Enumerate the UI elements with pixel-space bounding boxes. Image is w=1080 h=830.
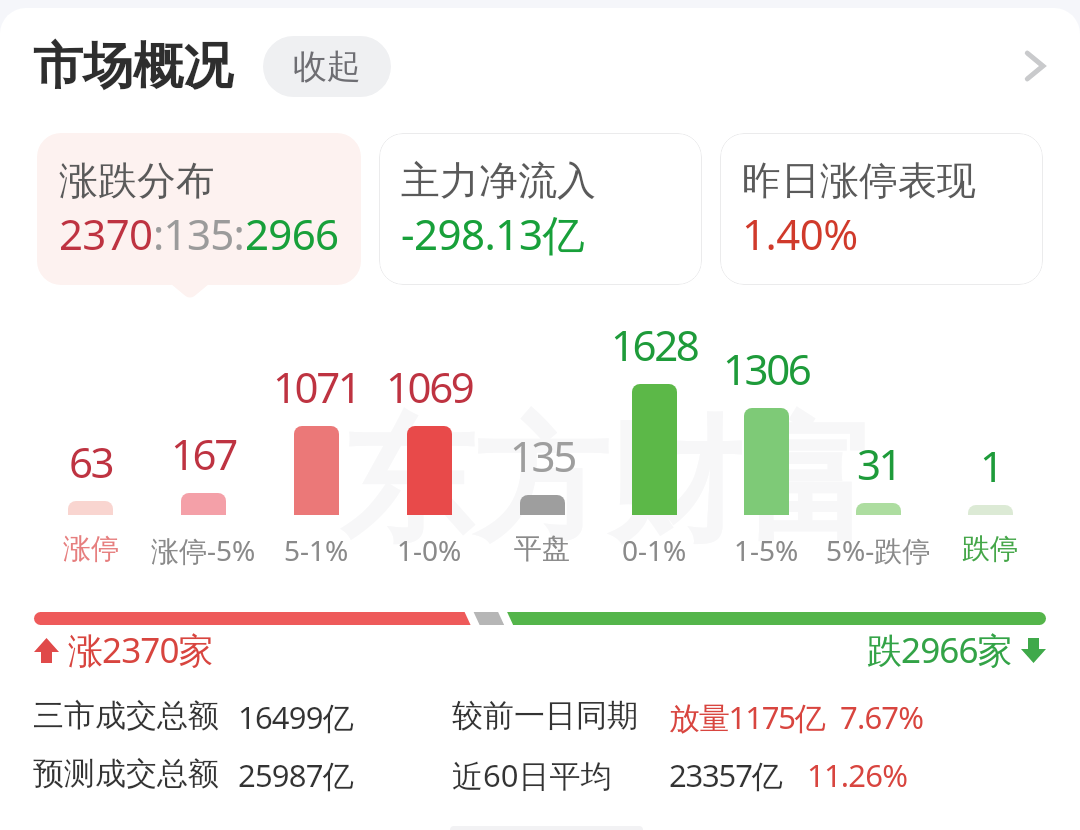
staticText: 2370: [59, 205, 153, 262]
staticText: 63: [69, 433, 113, 490]
staticText: 16499亿: [238, 696, 353, 738]
staticText: 放量1175亿: [669, 696, 825, 738]
button[interactable]: 预测成交总额: [0, 754, 1080, 798]
staticText: 1306: [723, 340, 810, 397]
button[interactable]: 昨日涨停表现: [720, 133, 1043, 285]
staticText: 涨2370家: [68, 626, 213, 674]
button[interactable]: 三市成交总额: [0, 696, 1080, 740]
staticText: 主力净流入: [401, 156, 596, 205]
staticText: 23357亿: [669, 754, 782, 796]
staticText: 1069: [386, 358, 473, 415]
staticText: 5%-跌停: [826, 531, 931, 566]
staticText: :135:: [153, 205, 245, 262]
button[interactable]: 涨跌分布: [37, 133, 361, 285]
staticText: 31: [857, 435, 901, 492]
staticText: 1.40%: [742, 205, 858, 262]
button[interactable]: 167: [147, 306, 260, 566]
button[interactable]: 1628: [598, 306, 710, 566]
staticText: 11.26%: [807, 754, 908, 796]
staticText: 涨停-5%: [151, 531, 256, 566]
staticText: 25987亿: [238, 754, 353, 796]
button[interactable]: 1071: [260, 306, 373, 566]
staticText: 昨日涨停表现: [742, 156, 976, 205]
staticText: 7.67%: [840, 696, 924, 738]
staticText: 1-0%: [397, 531, 462, 566]
staticText: -298.13亿: [401, 205, 584, 262]
staticText: 三市成交总额: [33, 696, 219, 735]
staticText: 1628: [611, 316, 698, 373]
staticText: 1: [980, 437, 1002, 494]
button[interactable]: 市场概况: [0, 8, 1080, 124]
staticText: 2966: [245, 205, 339, 262]
staticText: 涨跌分布: [59, 156, 215, 205]
staticText: 135: [510, 427, 575, 484]
staticText: 涨停: [63, 531, 119, 566]
button[interactable]: 63: [34, 306, 147, 566]
button[interactable]: 1: [934, 306, 1046, 566]
staticText: 收起: [293, 45, 361, 88]
staticText: 0-1%: [622, 531, 687, 566]
staticText: 跌停: [962, 531, 1018, 566]
staticText: 近60日平均: [452, 754, 612, 796]
button[interactable]: 收起: [263, 36, 391, 97]
staticText: 1-5%: [734, 531, 799, 566]
staticText: 东方财富: [340, 398, 876, 567]
button[interactable]: 31: [822, 306, 934, 566]
button[interactable]: More: [991, 26, 1071, 106]
staticText: 167: [171, 425, 236, 482]
staticText: 跌2966家: [867, 626, 1012, 674]
button[interactable]: 135: [486, 306, 598, 566]
button[interactable]: 1069: [373, 306, 486, 566]
staticText: 平盘: [514, 531, 570, 566]
staticText: 市场概况: [33, 35, 233, 98]
staticText: 1071: [273, 358, 360, 415]
button[interactable]: 主力净流入: [379, 133, 702, 285]
button[interactable]: 1306: [710, 306, 822, 566]
staticText: 较前一日同期: [452, 696, 638, 735]
staticText: 5-1%: [284, 531, 349, 566]
staticText: 预测成交总额: [33, 754, 219, 793]
